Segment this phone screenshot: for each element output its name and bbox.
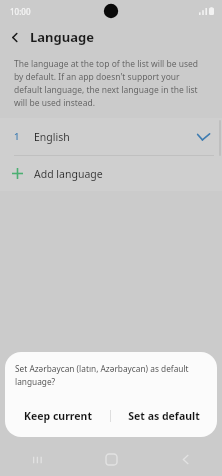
button[interactable]: Keep current	[5, 399, 110, 433]
button[interactable]: Set as default	[111, 399, 217, 433]
staticText: The language at the top of the list will…	[14, 58, 206, 109]
other: Selected	[188, 122, 218, 152]
staticText: Add language	[34, 167, 103, 181]
button[interactable]: 1	[0, 118, 222, 155]
staticText: English	[34, 130, 70, 144]
staticText: 10:00	[10, 6, 31, 17]
staticText: 1	[14, 130, 20, 143]
button[interactable]: Add language	[0, 156, 222, 191]
staticText: Set Azərbaycan (latın, Azərbaycan) as de…	[15, 363, 205, 387]
staticText: Language	[30, 28, 94, 46]
button[interactable]: Back	[0, 22, 30, 52]
staticText: Keep current	[24, 409, 92, 423]
staticText: Set as default	[128, 409, 200, 423]
